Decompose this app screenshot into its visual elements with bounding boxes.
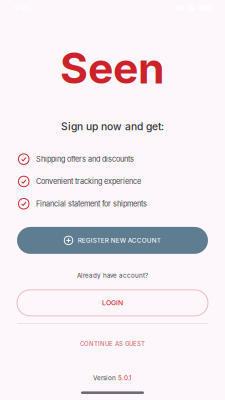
staticText: Shipping offers and discounts (36, 155, 134, 164)
staticText: Already have account? (77, 272, 148, 279)
staticText: 5.0.1 (118, 374, 132, 382)
staticText: Convenient tracking experience (36, 177, 141, 186)
staticText: CONTINUE AS GUEST (80, 340, 145, 348)
staticText: Seen (60, 42, 165, 94)
button[interactable]: REGISTER NEW ACCOUNT (17, 227, 208, 254)
staticText: REGISTER NEW ACCOUNT (78, 236, 161, 244)
staticText: Financial statement for shipments (36, 199, 147, 208)
button[interactable]: LOGIN (17, 290, 208, 316)
button[interactable]: CONTINUE AS GUEST (80, 340, 145, 348)
staticText: Sign up now and get: (61, 120, 164, 133)
staticText: Version (93, 374, 116, 382)
staticText: LOGIN (102, 299, 123, 307)
